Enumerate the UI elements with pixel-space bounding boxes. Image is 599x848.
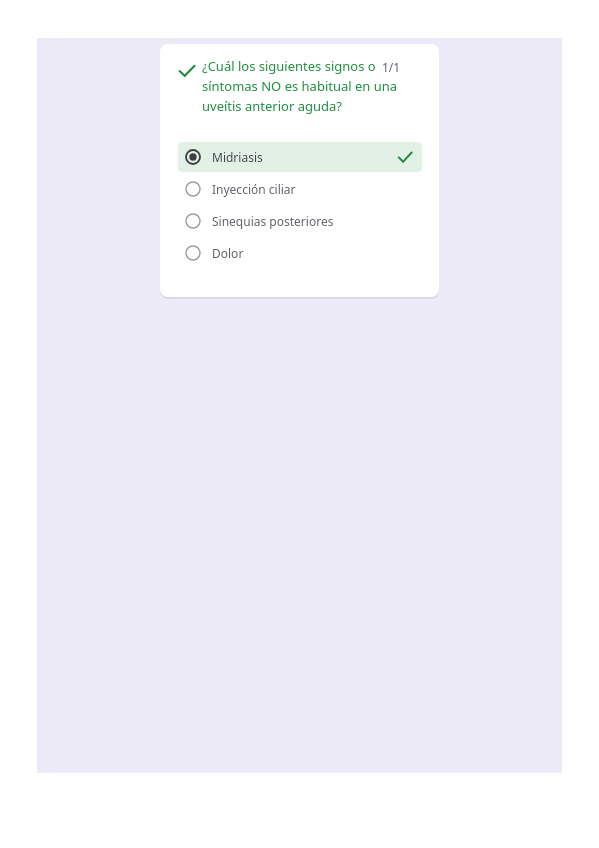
button[interactable]: Midriasis [178,142,422,172]
staticText: Sinequias posteriores [212,213,334,229]
button[interactable]: Inyección ciliar [178,174,422,204]
staticText: ¿Cuál los siguientes signos o síntomas N… [202,57,398,115]
button[interactable]: Dolor [178,238,422,268]
other: Correct answer [396,148,414,166]
staticText: Inyección ciliar [212,181,296,197]
staticText: Midriasis [212,149,263,165]
staticText: 1/1 [382,59,422,75]
button[interactable]: Sinequias posteriores [178,206,422,236]
staticText: Dolor [212,245,244,261]
